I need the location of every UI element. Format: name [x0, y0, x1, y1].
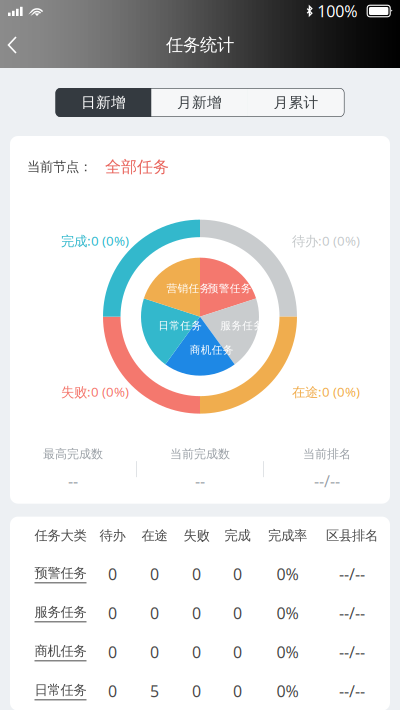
staticText: 0 — [233, 602, 242, 624]
staticText: 在途:0 (0%) — [292, 383, 360, 400]
staticText: --/-- — [339, 563, 365, 585]
staticText: 0 — [108, 602, 117, 624]
staticText: 日新增 — [81, 93, 126, 111]
staticText: 0% — [276, 641, 298, 663]
staticText: 当前排名 — [303, 447, 351, 461]
staticText: 5 — [150, 680, 159, 702]
staticText: 商机任务 — [190, 343, 234, 356]
button[interactable]: 日新增 — [55, 88, 151, 117]
staticText: 预警任务 — [208, 282, 252, 295]
staticText: 任务大类 — [34, 527, 86, 544]
staticText: 0 — [150, 602, 159, 624]
staticText: 0 — [150, 563, 159, 585]
button[interactable]: Back — [0, 22, 30, 68]
button[interactable]: 预警任务 — [31, 555, 89, 594]
staticText: 日常任务 — [34, 682, 86, 698]
staticText: 服务任务 — [34, 604, 86, 620]
button[interactable]: 服务任务 — [31, 594, 89, 633]
staticText: --/-- — [339, 602, 365, 624]
staticText: 待办:0 (0%) — [292, 232, 360, 249]
staticText: 失败 — [183, 527, 209, 544]
staticText: 0 — [108, 680, 117, 702]
staticText: --/-- — [339, 680, 365, 702]
staticText: 完成 — [224, 527, 250, 544]
staticText: 日常任务 — [158, 319, 202, 332]
staticText: 0 — [192, 641, 201, 663]
staticText: 0 — [192, 680, 201, 702]
staticText: 100% — [317, 0, 357, 22]
staticText: 服务任务 — [220, 319, 264, 332]
staticText: 在途 — [141, 527, 167, 544]
staticText: 0 — [192, 602, 201, 624]
staticText: 任务统计 — [166, 34, 234, 56]
staticText: 当前完成数 — [170, 447, 230, 461]
staticText: 月累计 — [273, 93, 318, 111]
staticText: 商机任务 — [34, 643, 86, 659]
staticText: --/-- — [314, 470, 340, 492]
staticText: --/-- — [339, 641, 365, 663]
button[interactable]: 月累计 — [247, 88, 344, 117]
staticText: 完成:0 (0%) — [61, 232, 129, 249]
staticText: 0 — [108, 563, 117, 585]
button[interactable]: 商机任务 — [31, 633, 89, 672]
staticText: 全部任务 — [105, 157, 169, 177]
staticText: 0 — [150, 641, 159, 663]
staticText: 待办 — [99, 527, 125, 544]
button[interactable]: 日常任务 — [31, 672, 89, 710]
staticText: 预警任务 — [34, 565, 86, 581]
staticText: -- — [68, 470, 78, 492]
staticText: 月新增 — [177, 93, 222, 111]
staticText: 0 — [233, 680, 242, 702]
staticText: 0 — [233, 641, 242, 663]
staticText: 0 — [233, 563, 242, 585]
staticText: 区县排名 — [326, 527, 378, 544]
staticText: 最高完成数 — [43, 447, 103, 461]
staticText: 失败:0 (0%) — [61, 383, 129, 400]
staticText: -- — [195, 470, 205, 492]
button[interactable]: 月新增 — [151, 88, 247, 117]
staticText: 完成率 — [268, 527, 307, 544]
staticText: 0% — [276, 563, 298, 585]
staticText: 0 — [108, 641, 117, 663]
staticText: 当前节点： — [27, 159, 92, 175]
staticText: 0% — [276, 680, 298, 702]
staticText: 营销任务 — [166, 282, 210, 295]
staticText: 0 — [192, 563, 201, 585]
staticText: 0% — [276, 602, 298, 624]
